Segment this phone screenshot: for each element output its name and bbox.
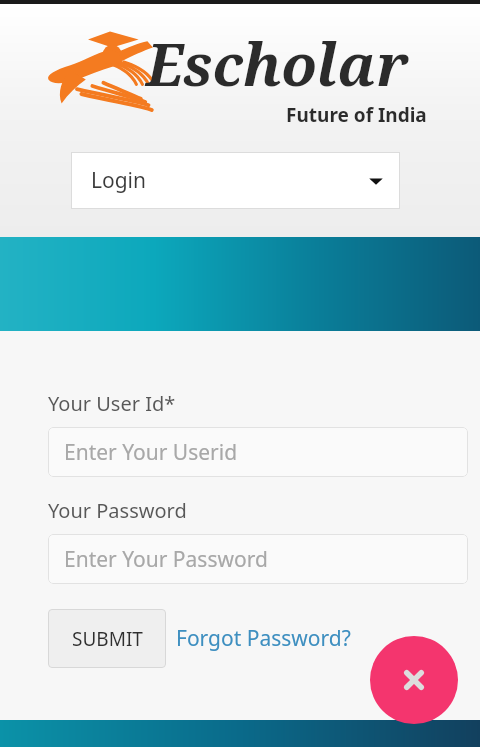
staticText: SUBMIT [72, 626, 143, 652]
staticText: Enter Your Password [64, 545, 268, 574]
button[interactable]: Login [71, 152, 400, 209]
staticText: Escholar [146, 24, 409, 103]
staticText: Login [91, 166, 147, 195]
button[interactable]: Close [370, 636, 458, 724]
button[interactable]: Enter Your Password [48, 534, 468, 584]
staticText: Your Password [48, 497, 187, 524]
staticText: Your User Id* [48, 390, 176, 417]
staticText: Forgot Password? [176, 624, 351, 653]
button[interactable]: Enter Your Userid [48, 427, 468, 477]
staticText: Future of India [286, 102, 427, 128]
button[interactable]: Forgot Password? [166, 618, 357, 659]
staticText: Enter Your Userid [64, 438, 238, 467]
button[interactable]: SUBMIT [48, 609, 166, 668]
